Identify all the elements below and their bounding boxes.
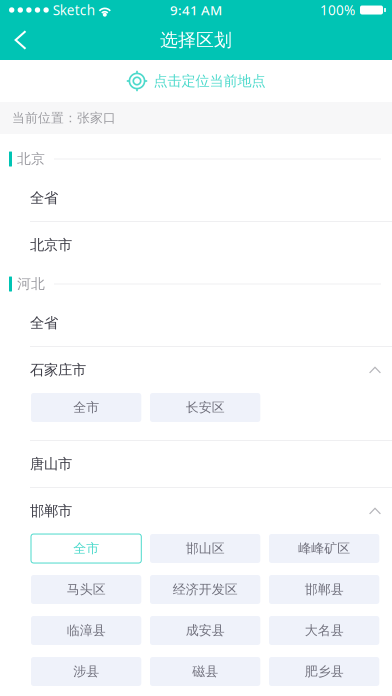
button[interactable]: 临漳县	[31, 616, 141, 645]
staticText: 邯山区	[186, 540, 225, 557]
staticText: 全省	[30, 314, 58, 332]
staticText: 长安区	[186, 399, 225, 416]
staticText: 点击定位当前地点	[153, 72, 265, 90]
button[interactable]: 全市	[31, 534, 141, 563]
button[interactable]: 唐山市	[0, 441, 392, 487]
button[interactable]: Back	[0, 20, 43, 60]
staticText: 经济开发区	[173, 581, 238, 598]
button[interactable]: 肥乡县	[269, 657, 379, 686]
staticText: 北京	[17, 150, 45, 168]
staticText: 临漳县	[67, 622, 106, 639]
staticText: 大名县	[305, 622, 344, 639]
button[interactable]: 石家庄市	[0, 347, 392, 393]
staticText: 全省	[30, 189, 58, 207]
staticText: 全市	[73, 399, 99, 416]
button[interactable]: 点击定位当前地点	[0, 60, 392, 102]
button[interactable]: 涉县	[31, 657, 141, 686]
button[interactable]: 长安区	[150, 393, 260, 422]
staticText: 河北	[17, 275, 45, 293]
button[interactable]: 经济开发区	[150, 575, 260, 604]
staticText: 100%	[320, 1, 355, 19]
staticText: 唐山市	[30, 455, 72, 473]
button[interactable]: 马头区	[31, 575, 141, 604]
button[interactable]: 峰峰矿区	[269, 534, 379, 563]
staticText: 磁县	[192, 663, 218, 680]
staticText: 峰峰矿区	[298, 540, 350, 557]
staticText: 邯郸县	[305, 581, 344, 598]
staticText: 当前位置：张家口	[12, 110, 116, 126]
button[interactable]: 北京市	[0, 222, 392, 268]
button[interactable]: 邯山区	[150, 534, 260, 563]
staticText: 北京市	[30, 236, 72, 254]
button[interactable]: 成安县	[150, 616, 260, 645]
staticText: 肥乡县	[305, 663, 344, 680]
staticText: 9:41 AM	[170, 1, 222, 19]
staticText: 成安县	[186, 622, 225, 639]
button[interactable]: 全省	[0, 300, 392, 346]
button[interactable]: 磁县	[150, 657, 260, 686]
button[interactable]: 大名县	[269, 616, 379, 645]
staticText: Sketch	[53, 1, 95, 19]
staticText: 邯郸市	[30, 502, 72, 520]
button[interactable]: 全省	[0, 175, 392, 221]
staticText: 马头区	[67, 581, 106, 598]
staticText: 选择区划	[160, 29, 232, 51]
staticText: 全市	[73, 540, 99, 557]
button[interactable]: 全市	[31, 393, 141, 422]
button[interactable]: 邯郸市	[0, 488, 392, 534]
button[interactable]: 邯郸县	[269, 575, 379, 604]
staticText: 涉县	[73, 663, 99, 680]
staticText: 石家庄市	[30, 361, 86, 379]
